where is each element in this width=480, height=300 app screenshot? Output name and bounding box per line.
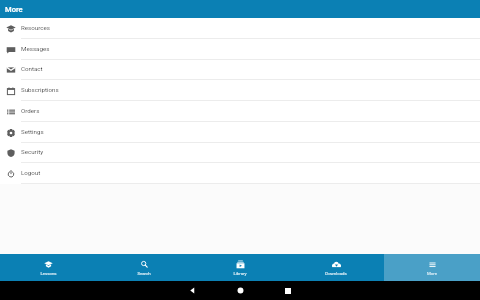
button[interactable]: More [384, 254, 480, 281]
staticText: Security [21, 148, 44, 155]
staticText: Contact [21, 65, 43, 72]
button[interactable]: Messages [0, 39, 480, 60]
staticText: Downloads [325, 271, 347, 276]
staticText: Search [137, 271, 151, 276]
button[interactable]: Home [216, 281, 264, 300]
staticText: Lessons [40, 271, 57, 276]
staticText: Logout [21, 169, 41, 176]
button[interactable]: Resources [0, 18, 480, 39]
button[interactable]: Security [0, 142, 480, 163]
staticText: Subscriptions [21, 86, 59, 93]
button[interactable]: Recents [264, 281, 312, 300]
button[interactable]: Library [192, 254, 288, 281]
staticText: Orders [21, 107, 40, 114]
staticText: More [427, 271, 437, 276]
staticText: Settings [21, 128, 44, 135]
button[interactable]: Back [168, 281, 216, 300]
button[interactable]: Logout [0, 163, 480, 184]
button[interactable]: Contact [0, 59, 480, 80]
button[interactable]: Subscriptions [0, 80, 480, 101]
staticText: More [5, 5, 23, 14]
button[interactable]: Search [96, 254, 192, 281]
staticText: Messages [21, 45, 50, 52]
button[interactable]: Settings [0, 122, 480, 143]
button[interactable]: Orders [0, 101, 480, 122]
staticText: Resources [21, 24, 50, 31]
button[interactable]: Lessons [0, 254, 96, 281]
button[interactable]: Downloads [288, 254, 384, 281]
staticText: Library [233, 271, 247, 276]
